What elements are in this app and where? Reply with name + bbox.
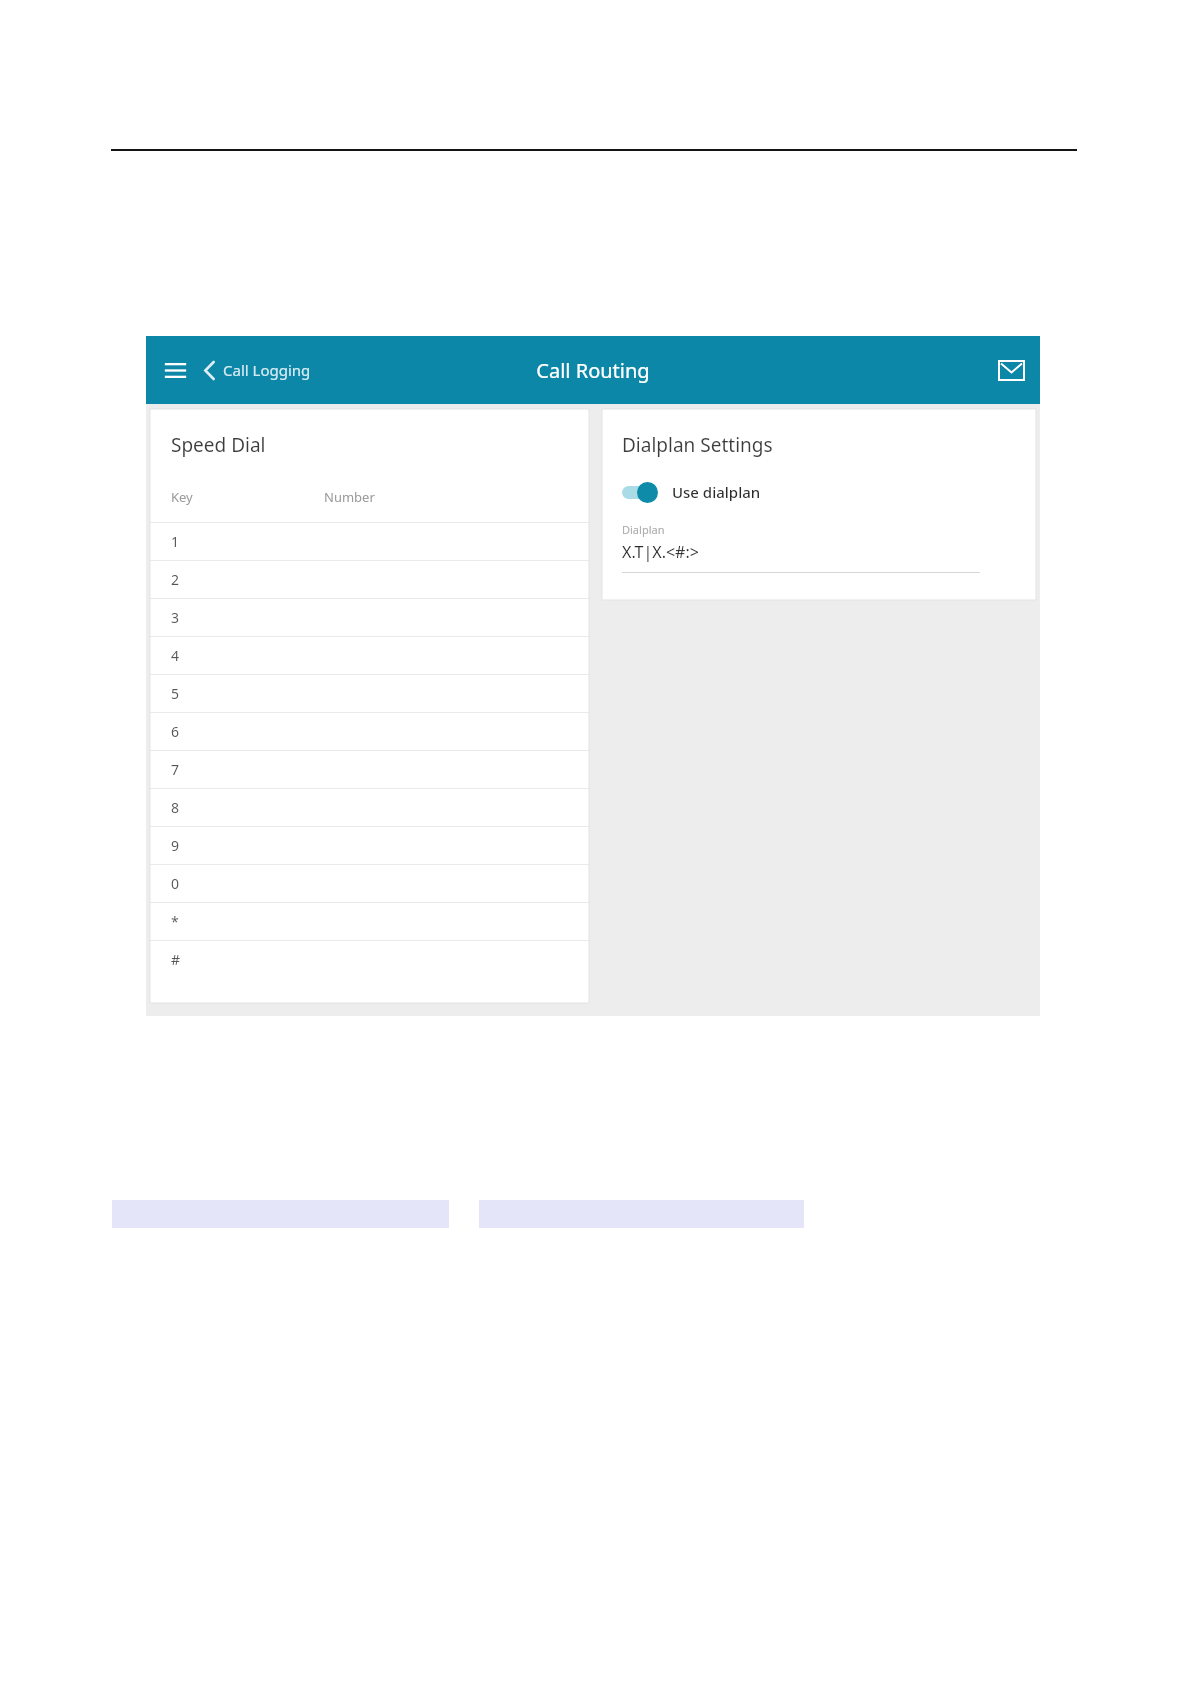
staticText: Speed Dial [171, 432, 266, 458]
staticText: 4 [171, 646, 180, 665]
staticText: 8 [171, 798, 180, 817]
staticText: 7 [171, 760, 180, 779]
button[interactable]: 6 [150, 713, 589, 750]
staticText: 2 [171, 570, 180, 589]
button[interactable]: 1 [150, 523, 589, 560]
button[interactable]: Call Logging [198, 347, 317, 393]
staticText: * [171, 912, 179, 931]
button[interactable]: 2 [150, 561, 589, 598]
staticText: Dialplan Settings [622, 432, 773, 458]
staticText: Use dialplan [672, 482, 761, 502]
button[interactable]: * [150, 903, 589, 940]
staticText: Number [324, 488, 375, 506]
staticText: 0 [171, 874, 180, 893]
staticText: # [171, 950, 181, 969]
button[interactable]: 9 [150, 827, 589, 864]
staticText: Call Logging [223, 360, 311, 380]
staticText: Key [171, 488, 324, 506]
button[interactable]: # [150, 941, 589, 978]
staticText: 5 [171, 684, 180, 703]
button[interactable]: Use dialplan [620, 475, 761, 509]
staticText: Dialplan [622, 522, 665, 537]
button[interactable]: 5 [150, 675, 589, 712]
staticText: 6 [171, 722, 180, 741]
button[interactable]: Messages [988, 347, 1034, 393]
button[interactable]: Open navigation menu [152, 347, 198, 393]
button[interactable]: 3 [150, 599, 589, 636]
staticText: 9 [171, 836, 180, 855]
button[interactable]: 8 [150, 789, 589, 826]
staticText: 1 [171, 532, 180, 551]
button[interactable]: 4 [150, 637, 589, 674]
button[interactable]: 7 [150, 751, 589, 788]
staticText: X.T|X.<#:> [622, 541, 699, 563]
button[interactable]: 0 [150, 865, 589, 902]
staticText: 3 [171, 608, 180, 627]
staticText: Call Routing [536, 357, 650, 384]
